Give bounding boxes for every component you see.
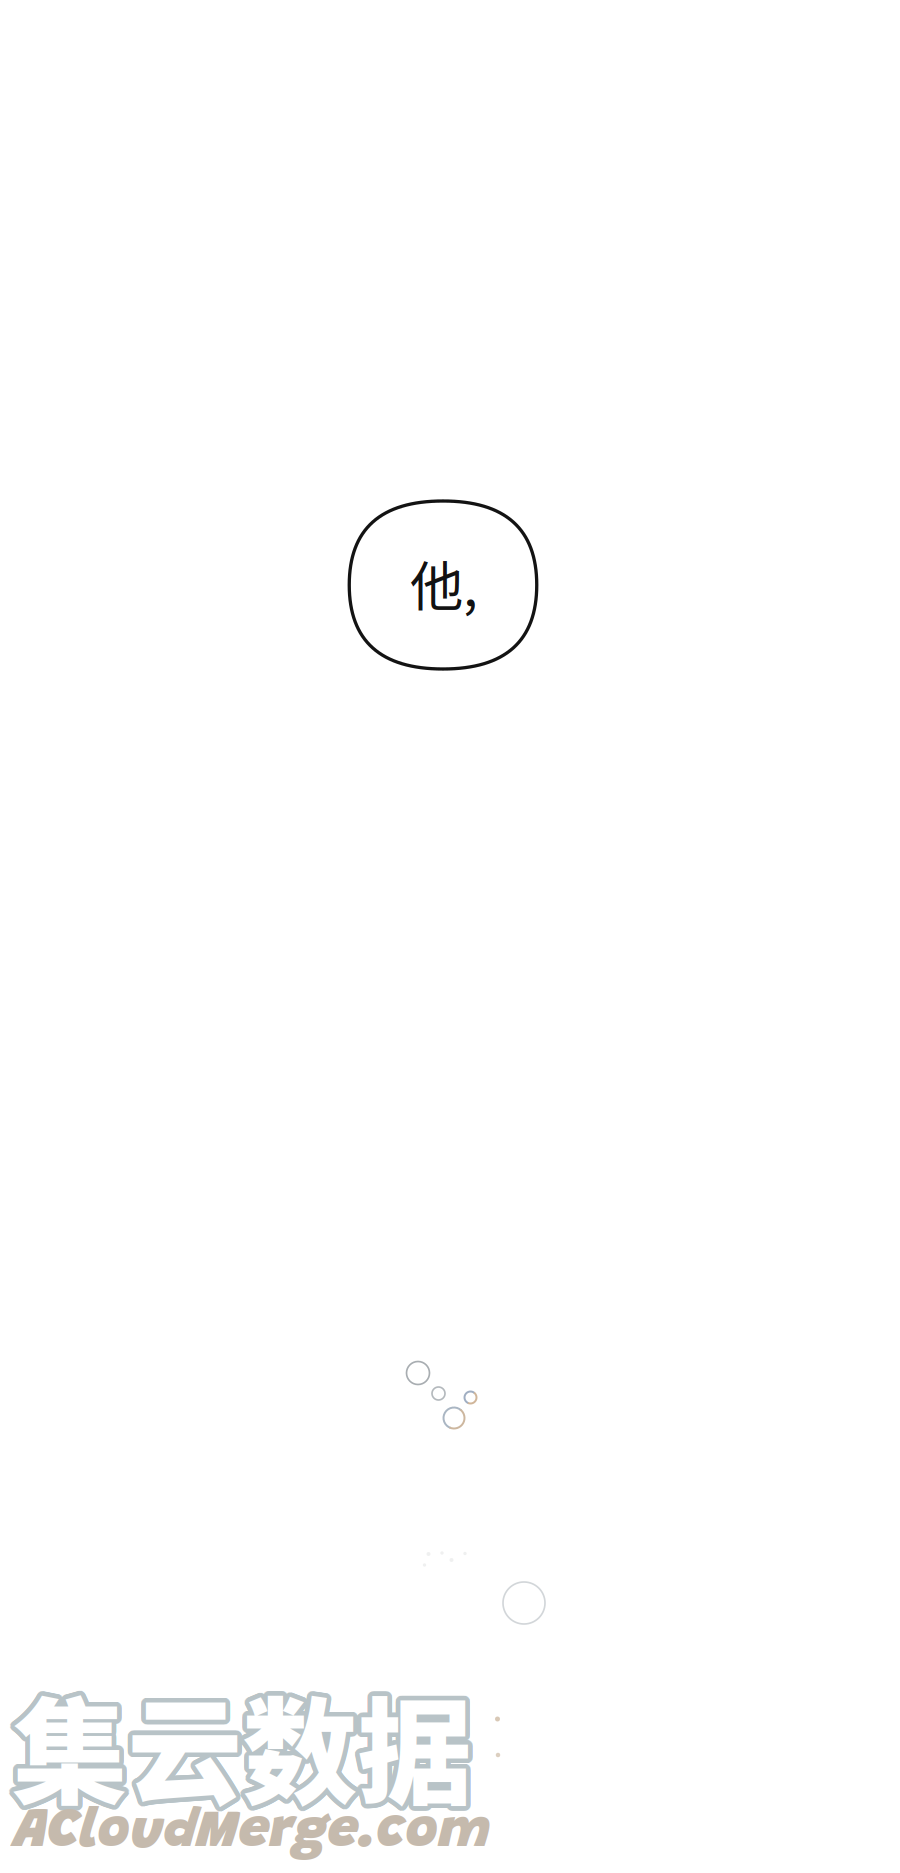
staticText: 集云数据 xyxy=(10,1657,470,1823)
staticText: 集云数据 xyxy=(9,1658,469,1824)
staticText: 集云数据 xyxy=(16,1659,476,1825)
staticText: 集云数据 xyxy=(12,1657,472,1823)
staticText: 集云数据 xyxy=(17,1660,477,1826)
staticText: 集云数据 xyxy=(10,1665,470,1831)
staticText: 集云数据 xyxy=(12,1661,472,1827)
button[interactable]: Comic page xyxy=(0,0,900,1873)
staticText: 集云数据 xyxy=(14,1657,474,1823)
staticText: 集云数据 xyxy=(8,1661,468,1827)
staticText: 集云数据 xyxy=(11,1666,471,1832)
staticText: 集云数据 xyxy=(16,1665,476,1831)
staticText: 集云数据 xyxy=(9,1665,469,1831)
staticText: 集云数据 xyxy=(11,1657,471,1823)
staticText: 集云数据 xyxy=(17,1661,477,1827)
staticText: 集云数据 xyxy=(16,1658,476,1824)
staticText: 集云数据 xyxy=(8,1664,468,1830)
staticText: 集云数据 xyxy=(15,1657,475,1823)
staticText: ACloudMerge.com xyxy=(13,1805,490,1861)
staticText: 集云数据 xyxy=(16,1664,476,1830)
staticText: 他, xyxy=(410,544,478,622)
staticText: 集云数据 xyxy=(15,1665,475,1831)
staticText: 集云数据 xyxy=(8,1663,468,1829)
staticText: 集云数据 xyxy=(17,1663,477,1829)
staticText: 集云数据 xyxy=(12,1666,472,1832)
staticText: 集云数据 xyxy=(8,1660,468,1826)
staticText: 集云数据 xyxy=(14,1666,474,1832)
staticText: 集云数据 xyxy=(8,1659,468,1825)
